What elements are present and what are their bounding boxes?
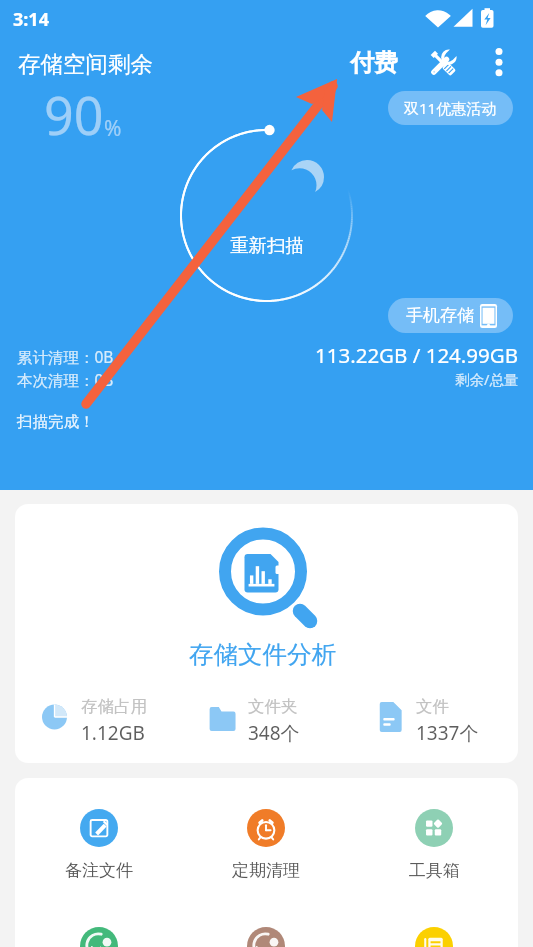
button[interactable]: 付费 xyxy=(344,45,404,81)
staticText: 双11优惠活动 xyxy=(404,98,497,118)
button[interactable]: 新 xyxy=(15,927,182,947)
staticText: 存储空间剩余 xyxy=(18,50,153,78)
staticText: 旧 xyxy=(255,945,269,947)
button[interactable]: 双11优惠活动 xyxy=(388,91,513,125)
button[interactable]: 工具箱 xyxy=(350,809,518,881)
staticText: 90 xyxy=(44,79,104,150)
staticText: 付费 xyxy=(350,48,398,78)
staticText: 1337个 xyxy=(416,720,479,746)
staticText: 113.22GB / 124.99GB xyxy=(315,341,519,369)
staticText: 新 xyxy=(88,945,102,947)
staticText: % xyxy=(104,114,122,143)
staticText: 本次清理：0B xyxy=(17,369,114,390)
button[interactable]: 定期清理 xyxy=(182,809,350,881)
button[interactable]: 旧 xyxy=(182,927,350,947)
staticText: 手机存储 xyxy=(406,305,474,326)
button[interactable] xyxy=(350,927,518,947)
staticText: 累计清理：0B xyxy=(17,346,114,367)
staticText: 3:14 xyxy=(13,7,49,32)
staticText: 1.12GB xyxy=(81,720,145,746)
staticText: 存储占用 xyxy=(81,696,147,717)
staticText: 备注文件 xyxy=(65,860,133,881)
staticText: 剩余/总量 xyxy=(455,369,519,389)
button[interactable]: 更多 xyxy=(486,42,512,80)
staticText: 扫描完成！ xyxy=(17,412,95,432)
staticText: 348个 xyxy=(248,720,300,746)
button[interactable]: 备注文件 xyxy=(15,809,182,881)
staticText: 文件夹 xyxy=(248,696,298,717)
staticText: 重新扫描 xyxy=(230,234,304,257)
staticText: 定期清理 xyxy=(232,860,300,881)
staticText: 存储文件分析 xyxy=(189,639,336,670)
staticText: 工具箱 xyxy=(409,860,460,881)
button[interactable]: 存储文件分析 xyxy=(15,504,518,763)
button[interactable]: 工具 xyxy=(425,45,461,81)
staticText: 文件 xyxy=(416,696,449,717)
button[interactable]: 手机存储 xyxy=(388,298,513,333)
